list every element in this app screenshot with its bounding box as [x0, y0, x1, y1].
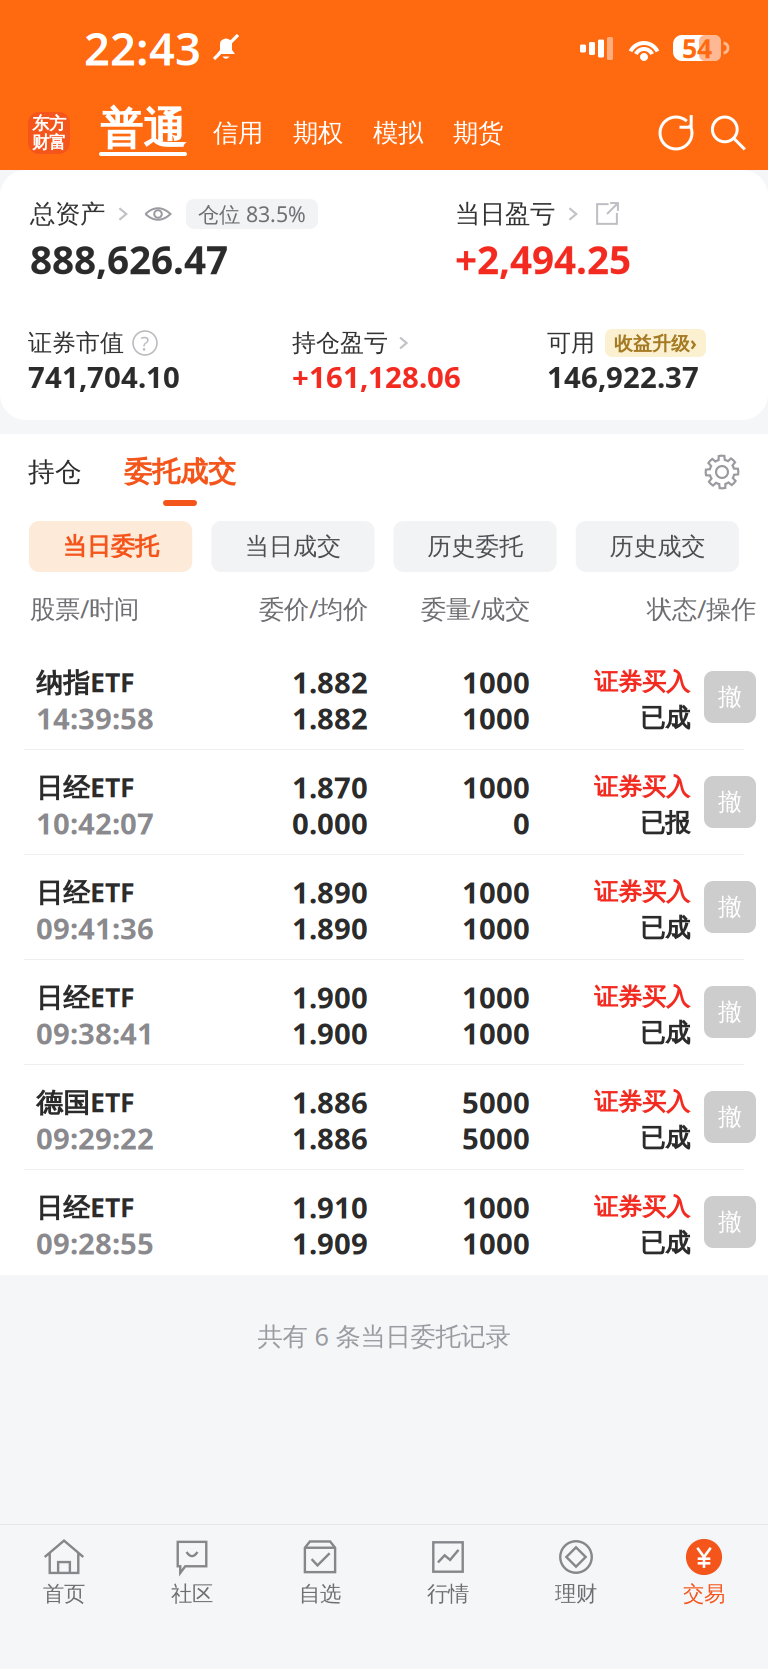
- staticText: 可用: [547, 328, 595, 358]
- staticText: 日经ETF: [36, 874, 135, 910]
- staticText: 持仓: [28, 456, 82, 488]
- button[interactable]: 日经ETF: [0, 750, 768, 855]
- button[interactable]: 社区: [128, 1535, 256, 1609]
- staticText: 888,626.47: [30, 234, 228, 285]
- button[interactable]: 交易: [640, 1535, 768, 1609]
- staticText: 1000: [462, 908, 530, 947]
- staticText: 1.900: [292, 1013, 368, 1052]
- staticText: 日经ETF: [36, 1189, 135, 1225]
- staticText: 1000: [462, 872, 530, 911]
- button[interactable]: Refresh: [650, 107, 702, 159]
- staticText: 撤: [718, 1102, 742, 1132]
- staticText: 09:28:55: [36, 1223, 154, 1262]
- staticText: 741,704.10: [28, 357, 180, 396]
- staticText: +2,494.25: [455, 234, 631, 285]
- staticText: 社区: [171, 1581, 213, 1607]
- staticText: 共有 6 条当日委托记录: [257, 1319, 510, 1353]
- staticText: 证券市值: [28, 328, 124, 358]
- button[interactable]: 历史委托: [393, 521, 557, 572]
- button[interactable]: 日经ETF: [0, 960, 768, 1065]
- staticText: 5000: [462, 1118, 530, 1157]
- button[interactable]: 日经ETF: [0, 855, 768, 960]
- staticText: 1000: [462, 698, 530, 737]
- staticText: 历史成交: [609, 532, 705, 561]
- button[interactable]: 理财: [512, 1535, 640, 1609]
- staticText: 期货: [453, 117, 503, 148]
- staticText: 撤: [718, 1207, 742, 1237]
- button[interactable]: 信用: [198, 108, 278, 158]
- staticText: 54: [682, 30, 712, 66]
- staticText: 已成: [640, 1017, 690, 1048]
- staticText: 财富: [32, 132, 66, 153]
- staticText: 1000: [462, 1187, 530, 1226]
- staticText: 证券买入: [594, 1192, 690, 1222]
- staticText: 10:42:07: [36, 803, 154, 842]
- staticText: 交易: [683, 1581, 725, 1607]
- staticText: 14:39:58: [36, 698, 154, 737]
- staticText: 期权: [293, 117, 343, 148]
- button[interactable]: 模拟: [358, 108, 438, 158]
- staticText: ?: [140, 330, 149, 356]
- staticText: 委价/均价: [259, 592, 368, 625]
- button[interactable]: 首页: [0, 1535, 128, 1609]
- staticText: 总资产: [30, 198, 105, 229]
- staticText: 信用: [213, 117, 263, 148]
- staticText: 委量/成交: [421, 592, 530, 625]
- staticText: 仓位 83.5%: [198, 200, 306, 228]
- staticText: 收益升级›: [614, 331, 697, 355]
- staticText: 历史委托: [427, 532, 523, 561]
- button[interactable]: 期货: [438, 108, 518, 158]
- staticText: 1000: [462, 767, 530, 806]
- button[interactable]: 当日委托: [29, 521, 192, 572]
- staticText: 纳指ETF: [36, 664, 135, 700]
- staticText: 普通: [100, 103, 186, 155]
- button[interactable]: 委托成交: [82, 434, 236, 510]
- staticText: 1000: [462, 977, 530, 1016]
- staticText: 09:41:36: [36, 908, 154, 947]
- staticText: 模拟: [373, 117, 423, 148]
- button[interactable]: 日经ETF: [0, 1170, 768, 1275]
- staticText: 当日委托: [63, 532, 159, 561]
- button[interactable]: 自选: [256, 1535, 384, 1609]
- staticText: 撤: [718, 682, 742, 712]
- staticText: 证券买入: [594, 667, 690, 697]
- button[interactable]: Search: [702, 107, 754, 159]
- staticText: 自选: [299, 1581, 341, 1607]
- staticText: 委托成交: [124, 455, 236, 489]
- staticText: 当日盈亏: [455, 198, 555, 229]
- staticText: 证券买入: [594, 1087, 690, 1117]
- staticText: 日经ETF: [36, 979, 135, 1015]
- staticText: 1000: [462, 1223, 530, 1262]
- button[interactable]: 行情: [384, 1535, 512, 1609]
- button[interactable]: Settings: [692, 434, 752, 510]
- button[interactable]: 持仓: [28, 434, 82, 510]
- staticText: 已成: [640, 912, 690, 943]
- button[interactable]: 历史成交: [576, 521, 739, 572]
- staticText: 撤: [718, 892, 742, 922]
- staticText: 1.909: [292, 1223, 368, 1262]
- staticText: 已报: [640, 807, 690, 838]
- button[interactable]: 期权: [278, 108, 358, 158]
- button[interactable]: 当日成交: [211, 521, 374, 572]
- staticText: 已成: [640, 1122, 690, 1153]
- staticText: 证券买入: [594, 772, 690, 802]
- staticText: 股票/时间: [30, 592, 139, 625]
- staticText: 1.870: [292, 767, 368, 806]
- staticText: 146,922.37: [547, 357, 699, 396]
- staticText: 1.886: [292, 1082, 368, 1121]
- staticText: 1000: [462, 1013, 530, 1052]
- staticText: 日经ETF: [36, 769, 135, 805]
- staticText: 持仓盈亏: [292, 328, 388, 358]
- button[interactable]: 纳指ETF: [0, 645, 768, 750]
- staticText: 1.910: [292, 1187, 368, 1226]
- staticText: 已成: [640, 1227, 690, 1258]
- button[interactable]: 德国ETF: [0, 1065, 768, 1170]
- staticText: 1000: [462, 662, 530, 701]
- staticText: 状态/操作: [647, 592, 756, 625]
- staticText: 东方: [32, 113, 66, 134]
- staticText: 09:29:22: [36, 1118, 154, 1157]
- staticText: 行情: [427, 1581, 469, 1607]
- staticText: 0.000: [292, 803, 368, 842]
- button[interactable]: 普通: [70, 106, 198, 160]
- staticText: 22:43: [84, 18, 201, 78]
